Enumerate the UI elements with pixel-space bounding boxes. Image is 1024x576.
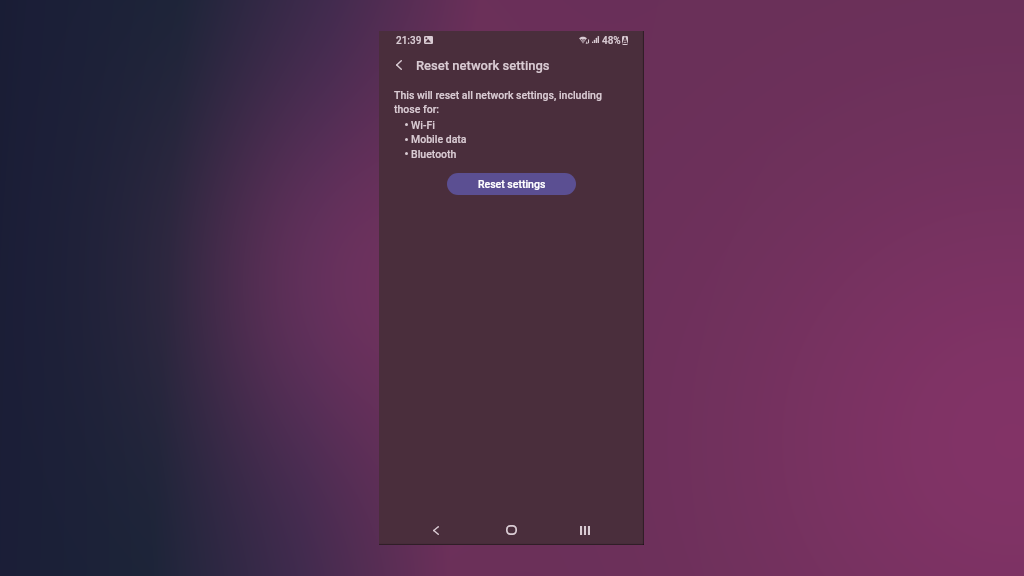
button[interactable]: Back (420, 515, 452, 545)
staticText: This will reset all network settings, in… (394, 89, 602, 115)
staticText: 48% (602, 35, 621, 47)
staticText: Mobile data (411, 133, 467, 145)
staticText: 21:39 (396, 35, 422, 47)
staticText: Reset network settings (416, 58, 550, 73)
button[interactable]: Recent apps (569, 515, 601, 545)
staticText: Wi-Fi (411, 119, 435, 131)
staticText: Bluetooth (411, 148, 457, 160)
button[interactable]: Home (495, 515, 527, 545)
staticText: Reset settings (478, 178, 546, 190)
button[interactable]: Navigate up (386, 52, 412, 78)
button[interactable]: Reset settings (447, 173, 576, 195)
